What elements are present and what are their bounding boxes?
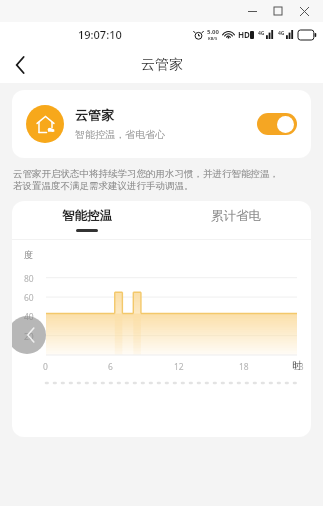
staticText: 80 [24, 273, 34, 285]
staticText: 18 [239, 361, 249, 373]
button[interactable]: Toggle cloud butler [257, 113, 297, 135]
button[interactable]: Maximize [265, 1, 291, 21]
staticText: KB/S [208, 36, 218, 41]
staticText: 云管家 [141, 56, 183, 74]
staticText: 智能控温，省电省心 [75, 128, 165, 141]
button[interactable]: 云管家 [12, 90, 311, 158]
staticText: 40 [24, 311, 34, 323]
button[interactable]: Close [291, 1, 317, 21]
staticText: HD [238, 29, 250, 40]
button[interactable]: 智能控温 [46, 204, 128, 236]
staticText: 60 [24, 292, 34, 304]
staticText: 6 [108, 361, 113, 373]
staticText: 4G [278, 30, 285, 37]
staticText: 云管家 [75, 107, 114, 123]
staticText: 5.00 [207, 28, 219, 36]
staticText: 0 [43, 361, 48, 373]
staticText: 若设置温度不满足需求建议进行手动调温。 [13, 180, 194, 192]
staticText: 4G [258, 30, 265, 37]
button[interactable]: Back [12, 316, 46, 354]
staticText: 累计省电 [211, 208, 261, 224]
staticText: 23 [294, 361, 304, 373]
staticText: 度 [24, 249, 33, 260]
button[interactable]: Minimize [239, 1, 265, 21]
staticText: 19:07:10 [78, 27, 122, 42]
button[interactable]: Back [0, 46, 40, 83]
staticText: 智能控温 [62, 208, 112, 224]
staticText: 12 [174, 361, 184, 373]
staticText: 20 [24, 331, 34, 343]
staticText: 时 [292, 359, 302, 372]
staticText: 云管家开启状态中将持续学习您的用水习惯，并进行智能控温， [13, 168, 279, 180]
button[interactable]: 累计省电 [195, 204, 277, 236]
